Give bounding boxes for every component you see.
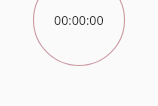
button[interactable]: Timer dial, 00:00:00 xyxy=(33,0,124,66)
staticText: 00:00:00 xyxy=(54,12,104,29)
